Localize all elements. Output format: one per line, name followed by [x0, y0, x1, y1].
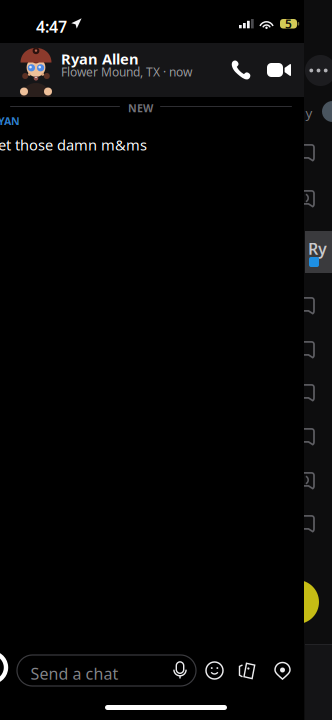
- staticText: RYAN: [0, 114, 20, 128]
- button[interactable]: Ryan Allen: [0, 43, 200, 97]
- button[interactable]: More options: [305, 55, 332, 86]
- button[interactable]: Audio call: [222, 43, 260, 97]
- staticText: 5: [285, 16, 292, 32]
- staticText: et those damn m&ms: [0, 135, 147, 154]
- staticText: 4:47: [36, 16, 67, 37]
- staticText: Ryan Allen: [61, 49, 139, 68]
- button[interactable]: Share location: [267, 655, 298, 686]
- staticText: y: [305, 104, 312, 122]
- button[interactable]: Emoji: [199, 655, 230, 686]
- button[interactable]: Video call: [260, 43, 298, 97]
- staticText: Flower Mound, TX · now: [61, 64, 192, 80]
- staticText: Send a chat: [30, 663, 118, 684]
- button[interactable]: Send a chat: [17, 655, 196, 686]
- staticText: Ry: [308, 238, 327, 259]
- button[interactable]: Camera: [0, 653, 6, 682]
- staticText: NEW: [128, 101, 153, 115]
- button[interactable]: Stickers: [232, 655, 263, 686]
